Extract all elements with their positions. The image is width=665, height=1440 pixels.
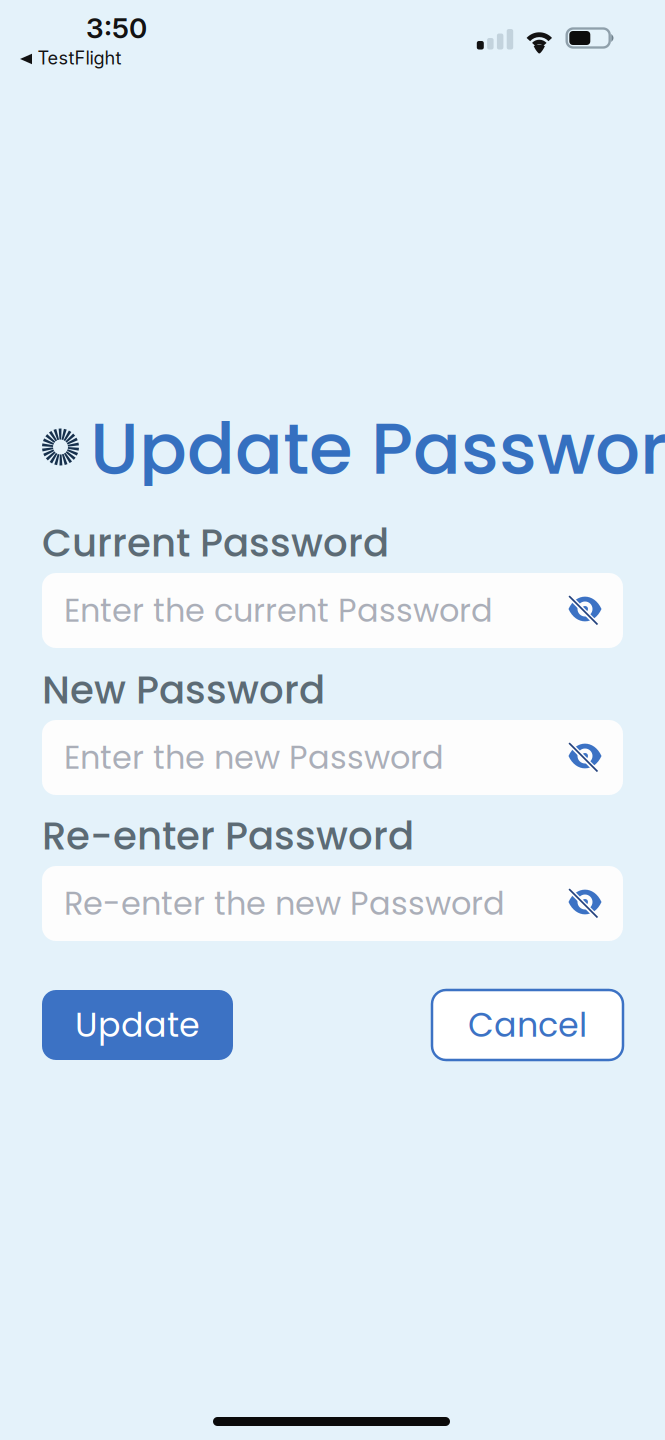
- staticText: Update: [75, 1002, 200, 1048]
- staticText: Enter the new Password: [64, 735, 444, 780]
- staticText: TestFlight: [37, 47, 121, 69]
- staticText: Update Password: [90, 399, 665, 498]
- button[interactable]: Cancel: [432, 990, 623, 1060]
- staticText: Re-enter the new Password: [64, 881, 505, 926]
- staticText: Cancel: [468, 1002, 587, 1048]
- staticText: New Password: [42, 663, 325, 717]
- button[interactable]: Current Password: [42, 573, 623, 648]
- staticText: 3:50: [86, 11, 147, 45]
- button[interactable]: Back to TestFlight: [14, 42, 127, 74]
- staticText: Enter the current Password: [64, 588, 493, 633]
- staticText: Re-enter Password: [42, 809, 414, 863]
- button[interactable]: New Password: [42, 720, 623, 795]
- staticText: Current Password: [42, 516, 389, 570]
- button[interactable]: Re-enter Password: [42, 866, 623, 941]
- button[interactable]: Update: [42, 990, 233, 1060]
